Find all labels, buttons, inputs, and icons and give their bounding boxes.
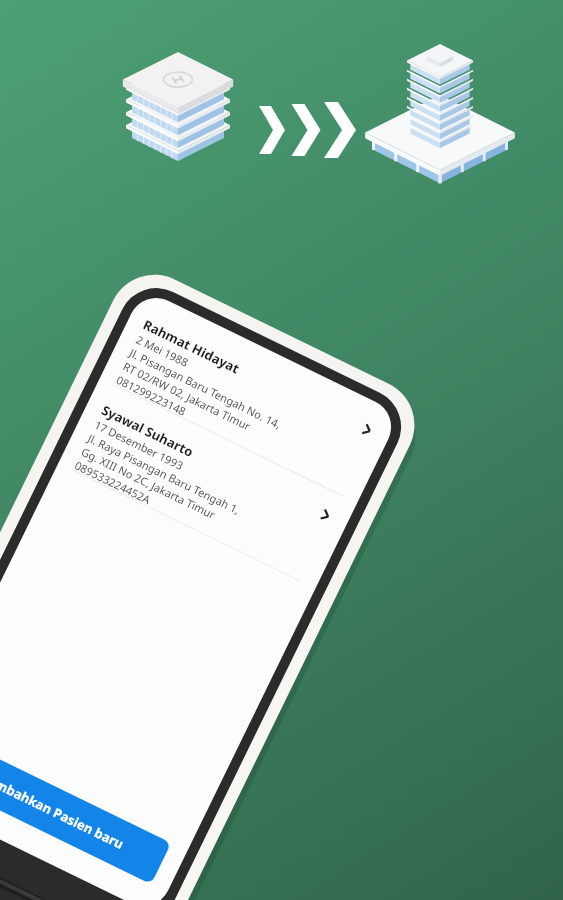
other: Clinic to hospital illustration (0, 0, 563, 220)
button[interactable]: App preview on phone (0, 0, 563, 900)
